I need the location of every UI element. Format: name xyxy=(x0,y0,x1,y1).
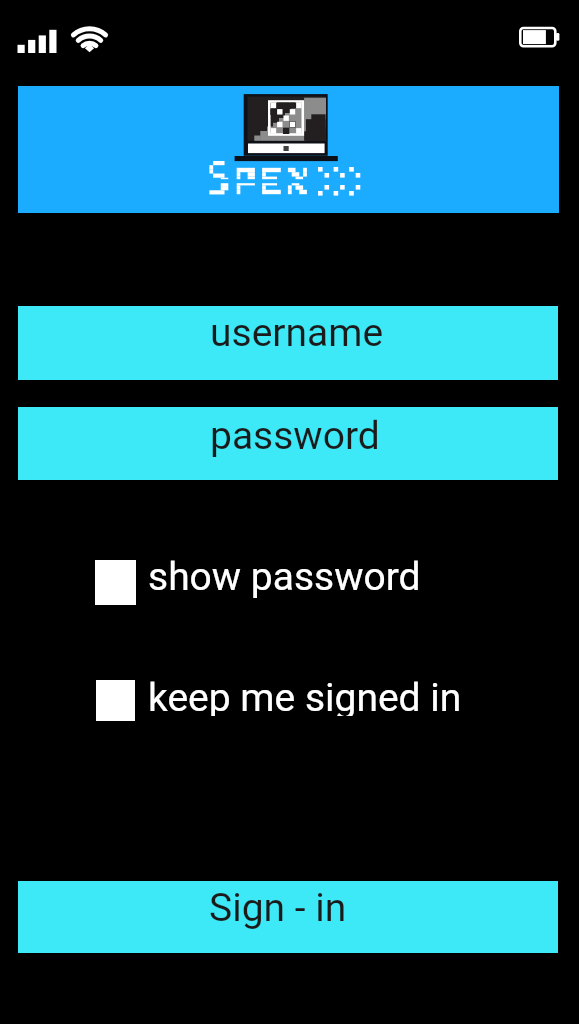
button[interactable]: Sign - in xyxy=(18,881,558,953)
other: Wi-Fi xyxy=(68,24,112,56)
button[interactable]: username xyxy=(18,306,558,380)
button[interactable]: keep me signed in xyxy=(96,680,466,721)
staticText: username xyxy=(210,310,384,356)
staticText: show password xyxy=(148,554,421,599)
other: Battery xyxy=(517,25,563,50)
staticText: Sign - in xyxy=(209,885,347,931)
button[interactable]: show password xyxy=(95,560,465,605)
staticText: keep me signed in xyxy=(148,675,462,716)
staticText: password xyxy=(210,413,380,459)
button[interactable]: password xyxy=(18,407,558,480)
other: Signal strength xyxy=(17,28,57,54)
